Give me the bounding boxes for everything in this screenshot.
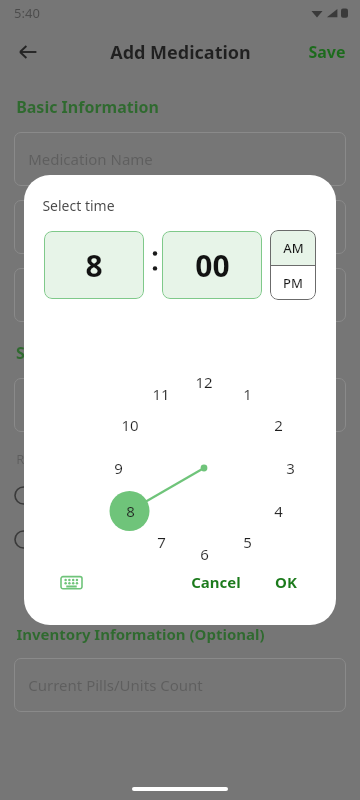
staticText: PM [283,274,303,292]
staticText: 5 [243,532,252,552]
button[interactable]: 12 [187,370,221,394]
staticText: 3 [286,458,295,478]
staticText: Current Pills/Units Count [28,675,203,695]
button[interactable]: 11 [144,382,178,406]
button[interactable]: Dosage [14,200,346,254]
button[interactable]: Save [308,41,346,63]
staticText: Inventory Information (Optional) [16,624,265,644]
staticText: 11 [152,384,170,404]
button[interactable]: 5 [230,530,264,554]
staticText: 6 [200,544,209,564]
button[interactable]: 8:00 AM [14,478,360,512]
staticText: 8 [126,501,135,521]
button[interactable]: Form [14,268,346,322]
staticText: 4 [274,501,283,521]
staticText: 10 [121,415,139,435]
staticText: Save [308,41,346,63]
staticText: AM [283,239,304,257]
staticText: Add Time [157,576,227,596]
button[interactable]: 4 [261,499,295,523]
staticText: Select time [42,196,115,215]
staticText: Dosage [28,217,82,237]
button[interactable]: Add Time [0,576,360,596]
staticText: Reminder Times [16,450,116,468]
staticText: 00 [195,245,230,286]
staticText: OK [275,572,297,592]
button[interactable]: 2 [261,413,295,437]
staticText: Medication Name [28,149,153,169]
staticText: 9 [114,458,123,478]
button[interactable]: AM [270,230,316,265]
button[interactable]: 8 [44,231,144,299]
button[interactable]: 00 [162,231,262,299]
staticText: Add Medication [110,40,251,65]
staticText: 5:40 [14,4,40,22]
button[interactable]: PM [270,266,316,300]
button[interactable]: 8 [113,499,147,523]
staticText: 7 [157,532,166,552]
button[interactable]: 1 [230,382,264,406]
button[interactable]: OK [256,565,316,599]
button[interactable]: 10 [113,413,147,437]
staticText: Schedule [16,342,88,364]
staticText: Form [28,285,66,305]
staticText: 2 [274,415,283,435]
staticText: 1 [243,384,252,404]
button[interactable]: 3 [273,456,307,480]
staticText: Cancel [191,572,241,592]
button[interactable]: Frequency [14,378,346,432]
button[interactable]: 9 [101,456,135,480]
staticText: Basic Information [16,96,159,118]
button[interactable]: 7 [144,530,178,554]
button[interactable]: Current Pills/Units Count [14,658,346,712]
button[interactable]: Switch to keyboard input [54,565,88,599]
button[interactable]: 8:00 AM [14,522,360,556]
staticText: 8 [85,245,103,286]
button[interactable]: 6 [187,542,221,566]
button[interactable]: Back [8,32,48,72]
button[interactable]: Medication Name [14,132,346,186]
button[interactable]: Cancel [171,565,261,599]
staticText: 12 [195,372,213,392]
